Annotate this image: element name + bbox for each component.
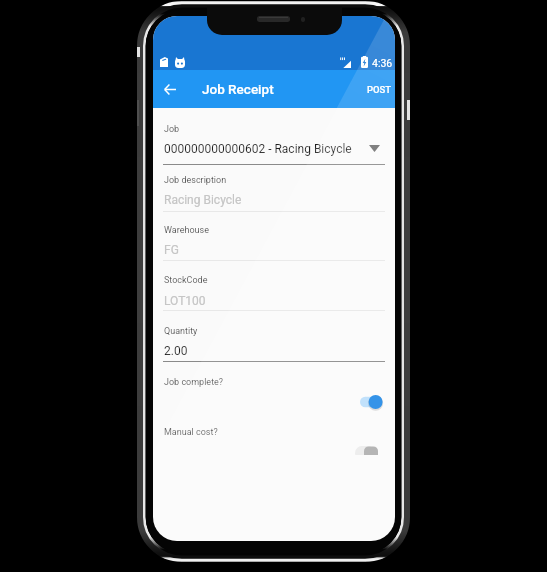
staticText: POST — [367, 84, 392, 95]
staticText: Job Receipt — [202, 81, 274, 97]
staticText: Job complete? — [164, 377, 224, 388]
staticText: Quantity — [164, 326, 198, 337]
staticText: 000000000000602 - Racing Bicycle — [164, 142, 352, 156]
staticText: 2.00 — [164, 344, 188, 358]
staticText: Racing Bicycle — [164, 193, 242, 207]
staticText: 4:36 — [372, 57, 393, 69]
staticText: FG — [164, 243, 179, 257]
staticText: Job description — [164, 175, 227, 186]
button[interactable]: POST — [357, 75, 395, 104]
staticText: Warehouse — [164, 225, 209, 236]
staticText: StockCode — [164, 275, 208, 286]
button[interactable]: Manual cost toggle, off — [355, 446, 378, 455]
button[interactable]: Job complete toggle, on — [360, 394, 384, 410]
staticText: Manual cost? — [164, 427, 218, 438]
staticText: LOT100 — [164, 294, 206, 308]
staticText: Job — [164, 124, 180, 135]
button[interactable]: Back — [153, 72, 187, 106]
